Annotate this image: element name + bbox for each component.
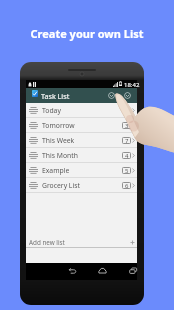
staticText: Add new list bbox=[29, 238, 65, 247]
button[interactable]: More options bbox=[124, 92, 131, 99]
button[interactable]: Grocery List bbox=[26, 178, 137, 193]
staticText: This Week bbox=[42, 136, 75, 145]
button[interactable]: Back bbox=[65, 265, 79, 276]
staticText: Example bbox=[42, 166, 70, 175]
staticText: 4 bbox=[125, 152, 129, 159]
staticText: 3 bbox=[125, 122, 129, 129]
staticText: 18:42 bbox=[124, 81, 140, 89]
staticText: Grocery List bbox=[42, 181, 80, 190]
button[interactable]: Home bbox=[95, 265, 109, 276]
button[interactable]: Add new list bbox=[26, 237, 137, 247]
staticText: 5 bbox=[125, 167, 129, 174]
staticText: This Month bbox=[42, 151, 78, 160]
button[interactable]: This Month bbox=[26, 148, 137, 163]
staticText: 6 bbox=[125, 182, 129, 189]
button[interactable]: This Week bbox=[26, 133, 137, 148]
button[interactable]: Today bbox=[26, 103, 137, 118]
button[interactable]: Example bbox=[26, 163, 137, 178]
staticText: Task List bbox=[41, 91, 70, 101]
staticText: Create your own List bbox=[0, 26, 174, 41]
button[interactable]: App icon bbox=[32, 90, 38, 97]
button[interactable]: Sort bbox=[108, 92, 115, 99]
other: Add bbox=[130, 240, 135, 245]
staticText: 7 bbox=[125, 137, 129, 144]
staticText: Tomorrow bbox=[42, 121, 75, 130]
button[interactable]: Tomorrow bbox=[26, 118, 137, 133]
staticText: Today bbox=[42, 106, 61, 115]
button[interactable]: Recent apps bbox=[126, 265, 140, 276]
